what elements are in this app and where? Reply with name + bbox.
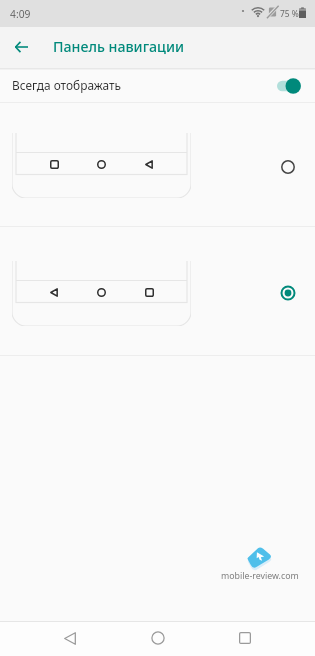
button[interactable]: Back xyxy=(53,621,87,655)
button[interactable]: Home xyxy=(141,621,175,655)
staticText: Всегда отображать xyxy=(12,77,122,93)
button[interactable] xyxy=(0,227,315,355)
staticText: mobile-review.com xyxy=(221,570,299,582)
button[interactable] xyxy=(0,103,315,226)
button[interactable]: Back xyxy=(6,32,36,62)
button[interactable]: Recents xyxy=(228,621,262,655)
staticText: Панель навигации xyxy=(53,37,184,56)
staticText: 4:09 xyxy=(10,7,31,21)
button[interactable]: Всегда отображать xyxy=(0,70,315,102)
staticText: 75 % xyxy=(280,8,299,19)
